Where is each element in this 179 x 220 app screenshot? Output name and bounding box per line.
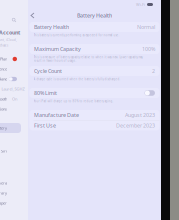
staticText: Apple Account, iCloud, xyxy=(0,38,17,42)
staticText: First Use xyxy=(34,122,56,129)
button[interactable]: 80% Limit xyxy=(29,88,159,98)
staticText: Media & Purchases xyxy=(0,44,8,47)
button[interactable]: First Use xyxy=(29,120,159,130)
staticText: 2 xyxy=(152,67,155,75)
staticText: A charge cycle is counted when the batte… xyxy=(33,77,120,81)
staticText: On xyxy=(12,96,17,102)
staticText: Apple Account xyxy=(0,29,20,36)
button[interactable]: Notifications xyxy=(0,104,21,114)
button[interactable]: App Library xyxy=(0,188,21,198)
staticText: Battery Health xyxy=(34,23,69,31)
button[interactable]: Camera xyxy=(0,178,21,188)
staticText: Laurel_5GHZ xyxy=(1,86,24,92)
button[interactable]: Wi-Fi xyxy=(0,84,21,94)
staticText: Camera xyxy=(0,180,7,186)
staticText: Wi-Fi xyxy=(136,2,145,7)
button[interactable]: Face & Siri xyxy=(0,146,21,156)
button[interactable]: Battery Health xyxy=(29,22,159,32)
staticText: Intelligence xyxy=(0,66,7,72)
button[interactable]: Apple Account xyxy=(0,29,35,51)
staticText: Face & Siri xyxy=(0,148,7,154)
staticText: Manufacture Date xyxy=(34,111,79,119)
staticText: App Library xyxy=(0,190,7,196)
staticText: Battery xyxy=(0,125,7,131)
staticText: Airplane xyxy=(0,76,7,82)
staticText: December 2023 xyxy=(116,122,155,129)
button[interactable]: Maximum Capacity xyxy=(29,44,159,54)
staticText: August 2023 xyxy=(125,111,155,119)
button[interactable]: Battery xyxy=(0,123,21,133)
staticText: Battery Health xyxy=(77,12,112,19)
button[interactable]: Wallpaper xyxy=(0,198,21,208)
button[interactable]: Airplane xyxy=(0,74,21,84)
staticText: 80% Limit xyxy=(34,89,57,97)
staticText: 100% xyxy=(142,45,155,53)
staticText: Access Plan xyxy=(0,56,7,62)
staticText: Maximum Capacity xyxy=(34,45,81,53)
staticText: Cycle Count xyxy=(34,67,62,75)
staticText: This is a measure of battery capacity re… xyxy=(33,55,142,63)
button[interactable]: Manufacture Date xyxy=(29,110,159,120)
button[interactable]: Access Plan xyxy=(0,54,21,64)
staticText: Bluetooth xyxy=(0,96,7,102)
button[interactable]: Back xyxy=(28,10,37,21)
button[interactable]: Cycle Count xyxy=(29,66,159,76)
staticText: Notifications xyxy=(0,106,7,112)
staticText: Normal xyxy=(137,23,155,31)
staticText: Wallpaper xyxy=(0,200,7,206)
staticText: Your iPad will charge up to 80% to reduc… xyxy=(33,99,113,103)
button[interactable]: Bluetooth xyxy=(0,94,21,104)
button[interactable]: Intelligence xyxy=(0,64,21,74)
staticText: This battery is currently performing as … xyxy=(33,33,119,37)
